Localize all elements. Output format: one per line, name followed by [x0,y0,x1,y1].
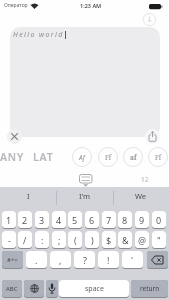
button[interactable]: ) [85,231,99,249]
button[interactable] [24,280,44,298]
button[interactable] [147,251,168,269]
staticText: ? [83,254,87,266]
button[interactable]: return [131,280,168,298]
staticText: 5 [72,214,78,226]
button[interactable]: 1 [2,211,16,229]
button[interactable]: 5 [68,211,82,229]
staticText: 6 [89,214,95,226]
staticText: ANY [0,150,25,164]
staticText: Ff [105,153,112,162]
button[interactable]: ! [98,251,119,269]
staticText: 1:23 AM [80,2,102,9]
button[interactable]: Ff [148,147,168,167]
staticText: Hello world [13,30,64,40]
staticText: , [59,254,62,266]
button[interactable]: Af [72,147,92,167]
button[interactable] [10,27,160,137]
staticText: - [8,234,11,246]
button[interactable]: . [26,251,47,269]
staticText: . [35,254,38,266]
staticText: 9 [139,214,145,226]
button[interactable]: 6 [85,211,99,229]
staticText: return [140,284,160,293]
staticText: $ [106,234,112,246]
button[interactable]: @ [135,231,149,249]
button[interactable]: - [2,231,16,249]
staticText: & [122,234,129,246]
button[interactable]: ( [68,231,82,249]
button[interactable]: ? [74,251,95,269]
button[interactable]: 0 [152,211,166,229]
button[interactable]: 8 [118,211,132,229]
button[interactable] [46,280,58,298]
button[interactable]: 4 [52,211,66,229]
button[interactable]: " [152,231,166,249]
button[interactable]: ' [122,251,143,269]
button[interactable]: We [113,186,169,206]
button[interactable]: & [118,231,132,249]
button[interactable] [142,12,157,27]
staticText: ! [107,254,110,266]
button[interactable]: ANY [0,150,25,164]
staticText: LAT [33,150,54,164]
staticText: I'm [79,191,91,201]
staticText: ( [74,234,77,246]
staticText: ) [91,234,94,246]
staticText: I [27,191,30,201]
button[interactable] [7,129,22,144]
button[interactable]: I'm [57,186,113,206]
staticText: Ff [155,153,162,162]
button[interactable]: I [0,186,56,206]
button[interactable]: af [123,147,143,167]
staticText: Af [79,153,85,162]
button[interactable]: 2 [18,211,32,229]
button[interactable]: ; [52,231,66,249]
staticText: 3 [39,214,45,226]
staticText: 4 [56,214,62,226]
staticText: Оператор [4,2,28,9]
staticText: We [135,191,147,201]
staticText: " [157,234,161,246]
button[interactable] [145,129,160,144]
button[interactable]: 7 [102,211,116,229]
staticText: / [23,234,27,246]
staticText: space [85,284,104,294]
button[interactable]: LAT [33,150,54,164]
staticText: af [130,153,137,162]
button[interactable]: $ [102,231,116,249]
button[interactable]: Ff [98,147,118,167]
staticText: 2 [22,214,28,226]
staticText: : [41,234,44,246]
button[interactable]: #+= [2,251,23,269]
staticText: ABC [6,285,18,293]
button[interactable]: / [18,231,32,249]
staticText: 12 [141,175,149,184]
button[interactable]: space [59,280,129,298]
button[interactable]: 3 [35,211,49,229]
staticText: @ [138,234,147,246]
button[interactable] [76,171,94,188]
staticText: 7 [106,214,112,226]
staticText: 1 [6,214,12,226]
button[interactable]: ABC [2,280,22,298]
staticText: ' [131,254,134,266]
button[interactable]: : [35,231,49,249]
staticText: ; [58,234,61,246]
staticText: 8 [122,214,128,226]
staticText: 0 [156,214,162,226]
button[interactable]: 9 [135,211,149,229]
staticText: #+= [7,256,18,264]
button[interactable]: , [50,251,71,269]
